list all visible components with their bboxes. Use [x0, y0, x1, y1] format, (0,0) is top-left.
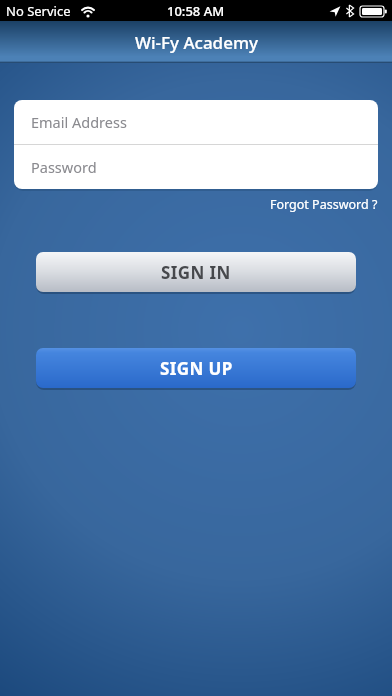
- staticText: No Service: [6, 2, 71, 20]
- staticText: 10:58 AM: [167, 2, 225, 20]
- staticText: Password: [31, 157, 97, 177]
- button[interactable]: SIGN UP: [36, 348, 356, 388]
- staticText: Email Address: [31, 112, 127, 132]
- staticText: SIGN UP: [160, 357, 233, 380]
- button[interactable]: SIGN IN: [36, 252, 356, 292]
- button[interactable]: Forgot Password ?: [270, 196, 378, 213]
- staticText: Forgot Password ?: [270, 196, 378, 213]
- button[interactable]: Password: [14, 145, 378, 189]
- button[interactable]: Email Address: [14, 100, 378, 144]
- staticText: Wi-Fy Academy: [135, 31, 258, 54]
- staticText: SIGN IN: [161, 261, 231, 284]
